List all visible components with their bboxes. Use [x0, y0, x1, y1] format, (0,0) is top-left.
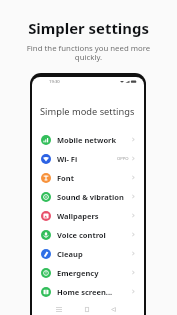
staticText: Sound & vibration [57, 192, 124, 202]
button[interactable]: Back [107, 306, 119, 313]
staticText: Mobile network [57, 135, 117, 145]
button[interactable]: Cleaup [32, 244, 144, 263]
button[interactable]: Mobile network [32, 130, 144, 149]
button[interactable]: Emergency [32, 263, 144, 282]
staticText: Voice control [57, 230, 106, 240]
button[interactable]: Voice control [32, 225, 144, 244]
staticText: OPPO [117, 156, 129, 162]
button[interactable]: Recents [53, 306, 65, 313]
staticText: Font [57, 173, 74, 183]
button[interactable]: Sound & vibration [32, 187, 144, 206]
staticText: Cleaup [57, 249, 83, 259]
staticText: Find the functions you need more quickly… [22, 43, 155, 62]
button[interactable]: Wallpapers [32, 206, 144, 225]
button[interactable]: Home [81, 306, 93, 313]
staticText: Home screen... [57, 287, 113, 297]
staticText: Simpler settings [0, 18, 177, 38]
button[interactable]: Wi- Fi [32, 149, 144, 168]
staticText: Simple mode settings [40, 105, 135, 118]
staticText: 19:30 [49, 79, 60, 85]
staticText: Emergency [57, 268, 99, 278]
staticText: Wi- Fi [57, 154, 78, 164]
staticText: Wallpapers [57, 211, 99, 221]
button[interactable]: Font [32, 168, 144, 187]
button[interactable]: Home screen... [32, 282, 144, 301]
